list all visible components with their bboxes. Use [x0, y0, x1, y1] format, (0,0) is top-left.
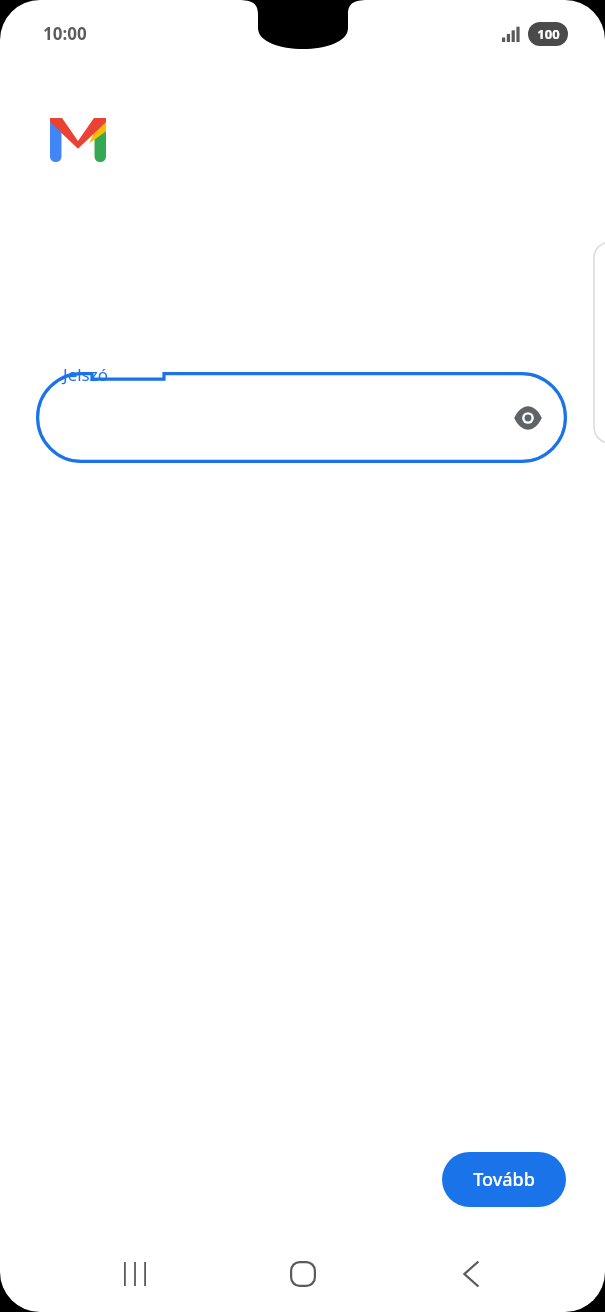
button[interactable]: Jelszó megjelenítése — [36, 372, 567, 463]
staticText: 100 — [537, 25, 560, 43]
staticText: 10:00 — [43, 22, 87, 45]
button[interactable]: Vissza — [440, 1242, 504, 1306]
button[interactable]: Legutóbbiak — [103, 1242, 167, 1306]
button[interactable]: Tovább — [442, 1152, 566, 1207]
button[interactable]: Jelszó megjelenítése — [510, 400, 546, 436]
button[interactable]: Kezdőképernyő — [271, 1242, 335, 1306]
staticText: Tovább — [473, 1167, 535, 1192]
staticText: Jelszó — [63, 363, 109, 386]
